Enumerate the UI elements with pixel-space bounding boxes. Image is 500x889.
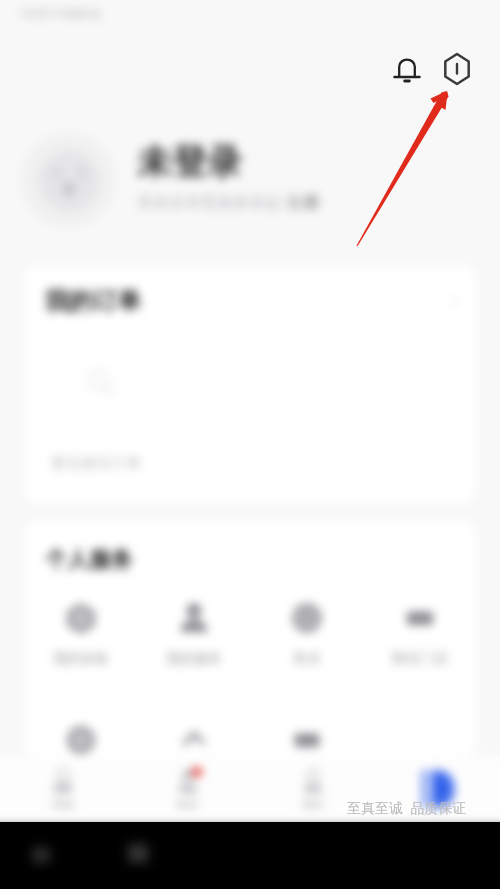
button[interactable]: 以旧换新: [137, 724, 250, 756]
staticText: 服务: [177, 797, 199, 811]
button[interactable]: Assistant: [414, 765, 462, 813]
staticText: 个人服务: [45, 546, 133, 574]
button[interactable]: 我的订单: [45, 266, 462, 336]
staticText: 未登录: [137, 140, 242, 184]
button[interactable]: Notifications: [392, 54, 422, 84]
button[interactable]: 注册: [286, 192, 320, 213]
staticText: 我的: [302, 797, 324, 811]
button[interactable]: 附近门店: [363, 602, 476, 668]
staticText: 我的服务: [166, 650, 222, 668]
button[interactable]: Avatar: [21, 133, 116, 228]
staticText: 我的订单: [45, 286, 141, 316]
staticText: 商城: [52, 797, 74, 811]
button[interactable]: 售后: [250, 602, 363, 668]
staticText: 14:09 中国移动: [19, 5, 101, 21]
staticText: 至真至诚 品质保证: [347, 798, 467, 817]
button[interactable]: 我的: [250, 767, 375, 811]
staticText: 登录后享受更多权益: [137, 191, 286, 213]
button[interactable]: Customer service: [441, 53, 473, 85]
button[interactable]: 我的权益: [24, 724, 137, 756]
button[interactable]: 商城: [0, 767, 125, 811]
button[interactable]: 我的设备: [24, 602, 137, 668]
staticText: 暂无相关订单: [51, 454, 141, 473]
staticText: 售后: [293, 650, 321, 668]
button[interactable]: 意见反馈: [250, 724, 363, 756]
button[interactable]: 服务: [125, 767, 250, 811]
staticText: 我的设备: [53, 650, 109, 668]
button[interactable]: 我的服务: [137, 602, 250, 668]
staticText: 附近门店: [392, 650, 448, 668]
